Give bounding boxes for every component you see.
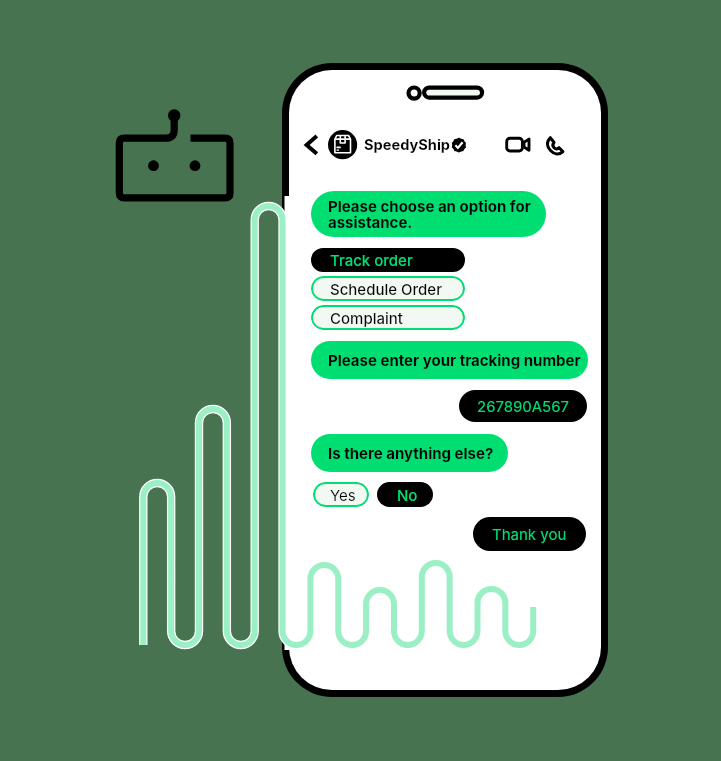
button[interactable]: Complaint [311,305,465,330]
button[interactable]: No [377,482,433,507]
staticText: Please enter your tracking number [328,351,581,369]
button[interactable]: Please choose an option for assistance. [311,191,546,237]
button[interactable]: Please enter your tracking number [311,341,588,379]
staticText: 267890A567 [477,397,570,415]
button[interactable]: 267890A567 [459,390,587,422]
button[interactable]: Is there anything else? [311,434,508,472]
staticText: Complaint [330,309,403,327]
staticText: SpeedyShip [364,136,451,154]
button[interactable]: Schedule Order [311,276,465,301]
staticText: Is there anything else? [328,444,494,462]
staticText: Yes [330,486,356,504]
button[interactable]: Yes [313,482,369,507]
button[interactable]: Track order [311,248,465,272]
staticText: Schedule Order [330,280,442,298]
staticText: Track order [330,251,413,269]
staticText: Please choose an option for assistance. [328,197,531,232]
button[interactable]: Thank you [473,517,586,551]
staticText: Thank you [492,525,567,543]
staticText: No [397,486,418,504]
